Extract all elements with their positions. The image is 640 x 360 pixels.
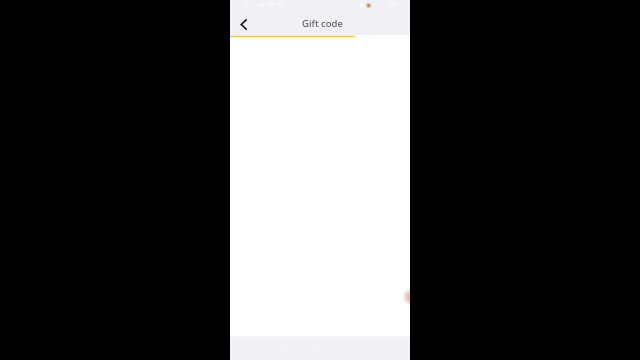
- staticText: Gift code: [302, 17, 343, 30]
- button[interactable]: Support chat: [400, 290, 410, 304]
- button[interactable]: Back: [234, 15, 252, 33]
